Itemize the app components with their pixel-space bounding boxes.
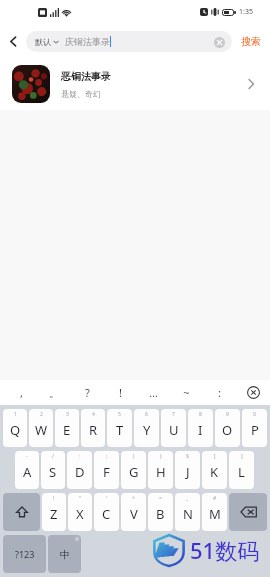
staticText: " [79,495,82,502]
staticText: 1 [14,411,17,418]
button[interactable]: Clear [209,32,229,52]
staticText: : [79,453,81,460]
staticText: F [103,463,110,481]
button[interactable]: [ [202,451,227,489]
staticText: V [130,505,138,523]
button[interactable]: ( [121,451,146,489]
button[interactable]: 3 [55,409,79,447]
staticText: Y [143,421,151,439]
button[interactable]: , [4,380,38,405]
staticText: E [63,421,71,439]
button[interactable]: ; [94,451,119,489]
button[interactable]: ? [71,380,104,405]
staticText: 6 [145,411,148,418]
button[interactable]: Backspace [229,493,267,531]
staticText: ?123 [15,548,35,560]
button[interactable]: 中 [48,535,81,573]
staticText: ] [241,453,243,460]
button[interactable]: Hide keyboard [236,380,270,405]
button[interactable]: 8 [188,409,213,447]
staticText: : [218,385,221,400]
staticText: 5 [118,411,121,418]
button[interactable]: : [67,451,92,489]
staticText: H [156,463,166,481]
button[interactable]: ! [42,493,66,531]
staticText: 51数码 [190,535,260,565]
button[interactable]: Back [0,24,26,58]
button[interactable]: 恶铜法事录 [0,58,270,110]
staticText: ' [106,495,108,502]
button[interactable]: : [203,380,236,405]
button[interactable]: 0 [242,409,267,447]
staticText: A [23,463,32,481]
staticText: … [149,385,158,400]
staticText: / [52,453,54,460]
button[interactable]: … [137,380,170,405]
staticText: 3 [66,411,69,418]
staticText: P [251,421,259,439]
staticText: - [26,453,28,460]
staticText: _ [186,495,189,502]
staticText: M [209,505,221,523]
staticText: 8 [199,411,202,418]
staticText: # [213,495,217,502]
staticText: J [186,463,190,481]
staticText: X [76,505,84,523]
staticText: T [116,421,124,439]
staticText: ? [85,385,90,400]
staticText: I [198,421,203,439]
button[interactable]: / [41,451,65,489]
staticText: U [169,421,179,439]
staticText: 0 [253,411,256,418]
button[interactable]: ) [148,451,173,489]
staticText: $ [186,453,189,460]
button[interactable]: 5 [107,409,132,447]
staticText: 悬疑、奇幻 [61,89,101,99]
button[interactable]: ~ [170,380,203,405]
staticText: 9 [226,411,229,418]
staticText: 4 [92,411,95,418]
button[interactable]: 7 [161,409,186,447]
staticText: ) [160,453,162,460]
button[interactable]: _ [175,493,200,531]
staticText: O [222,421,233,439]
button[interactable]: ! [104,380,137,405]
staticText: ~ [183,385,190,400]
staticText: ! [119,385,122,400]
staticText: ( [133,453,135,460]
button[interactable]: $ [175,451,200,489]
staticText: R [89,421,98,439]
staticText: D [75,463,85,481]
staticText: 。 [49,386,60,400]
staticText: K [210,463,219,481]
staticText: C [102,505,111,523]
button[interactable]: 。 [38,380,71,405]
staticText: ! [53,495,55,502]
button[interactable]: ] [229,451,254,489]
button[interactable]: = [148,493,173,531]
button[interactable]: 默认 [26,31,232,52]
button[interactable]: ?123 [3,535,46,573]
staticText: [ [214,453,216,460]
button[interactable]: ' [94,493,119,531]
staticText: + [132,495,135,502]
button[interactable]: 9 [215,409,240,447]
button[interactable]: + [121,493,146,531]
button[interactable]: " [68,493,92,531]
button[interactable]: 2 [29,409,53,447]
staticText: W [35,421,48,439]
staticText: B [156,505,165,523]
button[interactable]: 4 [81,409,105,447]
staticText: 2 [40,411,43,418]
button[interactable]: 6 [134,409,159,447]
button[interactable]: 搜索 [232,24,270,58]
button[interactable]: # [202,493,227,531]
staticText: 7 [172,411,175,418]
staticText: L [238,463,245,481]
button[interactable]: Shift [3,493,40,531]
staticText: 庆铜法事录 [65,36,110,47]
button[interactable]: - [15,451,39,489]
button[interactable]: 1 [3,409,27,447]
staticText: N [183,505,193,523]
staticText: , [20,385,23,400]
